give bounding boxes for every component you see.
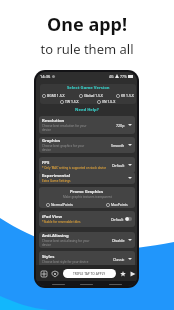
button[interactable]: Favorite [118, 269, 127, 278]
staticText: 77% [120, 74, 127, 79]
staticText: NormalPoints [51, 202, 73, 207]
button[interactable]: BGMI 1.5.X [42, 93, 65, 98]
staticText: Graphics [42, 138, 61, 144]
button[interactable]: Need Help? [75, 107, 99, 113]
staticText: Default [112, 163, 125, 168]
button[interactable]: Play [129, 269, 137, 278]
staticText: to rule them all [40, 40, 134, 58]
staticText: Disable [112, 238, 125, 243]
staticText: *Stable for reservable titles [42, 220, 81, 224]
button[interactable]: Graphics [39, 137, 135, 153]
staticText: Smooth [111, 143, 125, 148]
staticText: FPS [42, 160, 50, 166]
button[interactable]: Apps [39, 269, 48, 278]
button[interactable]: VN 1.5.X [97, 99, 116, 104]
staticText: Styles [42, 254, 55, 260]
button[interactable]: FPS [39, 157, 135, 173]
staticText: Anti-Aliasing [42, 233, 69, 239]
staticText: TW 1.5.X [65, 99, 79, 104]
staticText: Choose best graphics for your device [42, 144, 85, 152]
button[interactable]: MaxPoints [106, 202, 128, 207]
staticText: 14:36 [40, 74, 51, 79]
button[interactable]: Anti-Aliasing [39, 232, 135, 248]
staticText: KR 1.5.X [121, 93, 134, 98]
staticText: Experimental [42, 173, 70, 179]
staticText: Select Game Version [67, 85, 110, 91]
button[interactable]: KR 1.5.X [116, 93, 134, 98]
staticText: One app! [47, 12, 127, 37]
staticText: Choose best resolution for your device [42, 124, 87, 132]
staticText: Resolution [42, 118, 65, 124]
staticText: 4G [109, 74, 114, 79]
button[interactable]: TW 1.5.X [60, 99, 79, 104]
button[interactable]: Select Game Version [40, 84, 136, 104]
staticText: iPad View [42, 214, 63, 220]
staticText: 720p [116, 123, 125, 128]
staticText: Global 1.5.X [84, 93, 103, 98]
button[interactable]: NormalPoints [46, 202, 73, 207]
staticText: Choose best style for your device [42, 260, 89, 264]
staticText: Classic [113, 257, 125, 262]
button[interactable]: Global 1.5.X [79, 93, 103, 98]
staticText: MaxPoints [111, 202, 128, 207]
button[interactable]: Resolution [39, 116, 135, 134]
staticText: VN 1.5.X [102, 99, 116, 104]
staticText: Extra Game Settings [42, 179, 71, 183]
staticText: * Only 'MAX' setting is supported on sto… [42, 166, 107, 170]
button[interactable]: Experimental [39, 172, 135, 184]
staticText: Make graphic textures transparent [63, 195, 112, 199]
button[interactable]: Promo Graphics [39, 187, 135, 208]
staticText: Promo Graphics [70, 189, 104, 195]
staticText: Choose best anti-aliasing for your devic… [42, 239, 90, 247]
button[interactable]: TRIPLE TAP TO APPLY [63, 269, 116, 278]
button[interactable]: iPad View [39, 211, 135, 227]
button[interactable]: Security [50, 269, 59, 278]
button[interactable]: Styles [39, 251, 135, 267]
staticText: Default [111, 217, 124, 222]
staticText: TRIPLE TAP TO APPLY [73, 272, 106, 276]
staticText: BGMI 1.5.X [47, 93, 65, 98]
